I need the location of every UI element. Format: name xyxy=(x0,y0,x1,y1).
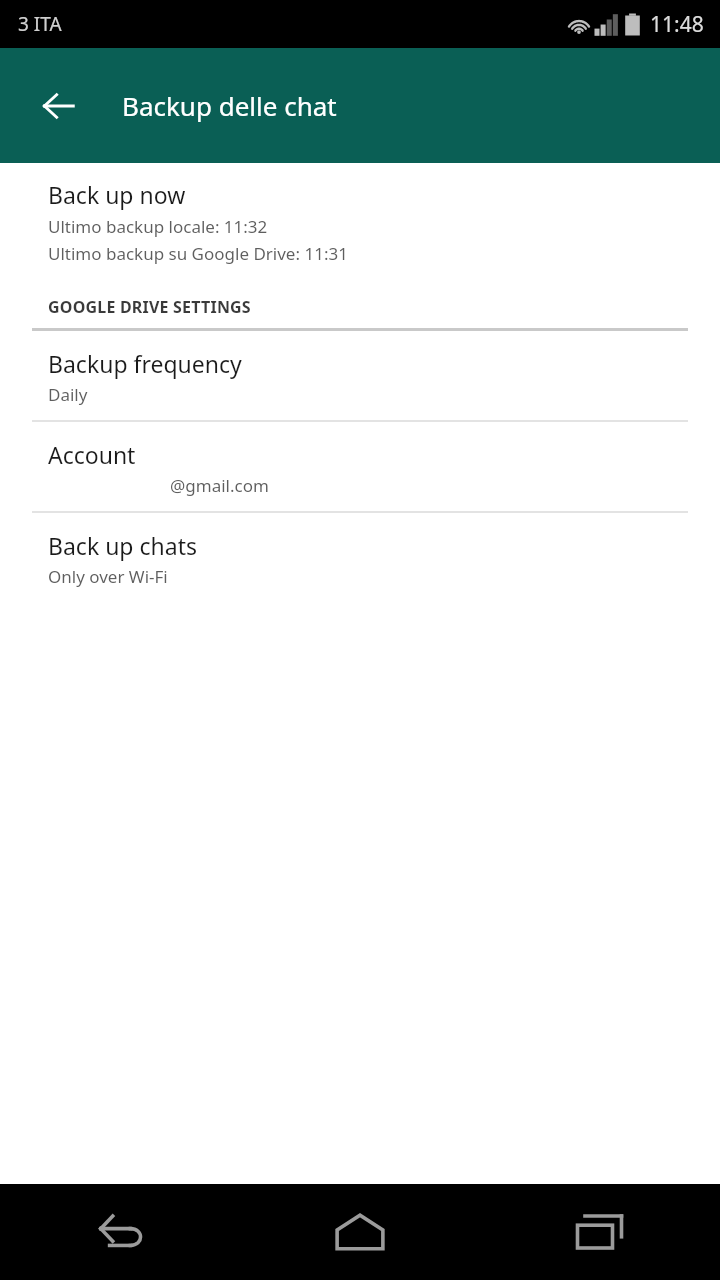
button[interactable]: Back up now xyxy=(0,163,720,275)
staticText: Backup delle chat xyxy=(122,88,337,123)
button[interactable]: Back xyxy=(0,1184,240,1280)
staticText: 3 ITA xyxy=(18,11,62,37)
staticText: 11:48 xyxy=(650,10,704,39)
staticText: Only over Wi-Fi xyxy=(48,565,168,588)
staticText: @gmail.com xyxy=(170,474,269,497)
button[interactable]: Recent apps xyxy=(480,1184,720,1280)
staticText: Account xyxy=(48,439,136,470)
staticText: GOOGLE DRIVE SETTINGS xyxy=(48,296,251,318)
staticText: Backup frequency xyxy=(48,348,242,379)
staticText: Ultimo backup su Google Drive: 11:31 xyxy=(48,242,348,265)
button[interactable]: Home xyxy=(240,1184,480,1280)
button[interactable]: Backup frequency xyxy=(0,331,720,420)
button[interactable]: Back up chats xyxy=(0,513,720,602)
staticText: Back up chats xyxy=(48,530,197,561)
staticText: Ultimo backup locale: 11:32 xyxy=(48,215,268,238)
button[interactable]: Back xyxy=(26,74,90,138)
staticText: Back up now xyxy=(48,179,186,210)
staticText: Daily xyxy=(48,383,88,406)
button[interactable]: Account xyxy=(0,422,720,511)
